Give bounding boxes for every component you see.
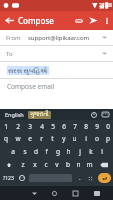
button[interactable]: Recent apps: [65, 186, 86, 200]
button[interactable]: s: [19, 145, 30, 158]
staticText: i: [85, 134, 87, 143]
staticText: From: [6, 34, 21, 42]
staticText: h: [66, 147, 71, 156]
staticText: ?123: [3, 175, 14, 182]
button[interactable]: ?123: [0, 171, 16, 185]
staticText: c: [44, 160, 48, 169]
button[interactable]: More options: [101, 11, 113, 30]
button[interactable]: Back: [24, 186, 44, 200]
button[interactable]: l: [96, 145, 107, 158]
button[interactable]: x: [29, 158, 40, 171]
button[interactable]: 4: [36, 120, 47, 132]
button[interactable]: y: [58, 132, 69, 145]
button[interactable]: k: [85, 145, 96, 158]
staticText: s: [23, 147, 27, 156]
staticText: English: [5, 111, 24, 118]
staticText: n: [76, 160, 81, 169]
staticText: 3: [28, 122, 32, 131]
button[interactable]: Keyboard settings: [99, 109, 111, 120]
button[interactable]: w: [12, 132, 24, 145]
staticText: e: [28, 134, 32, 143]
button[interactable]: t: [47, 132, 58, 145]
button[interactable]: સરસ સુબહિએ: [0, 62, 113, 78]
staticText: support@lipikaar.com: [28, 34, 90, 42]
button[interactable]: q: [0, 132, 12, 145]
staticText: To: [6, 50, 13, 58]
staticText: 5: [51, 122, 55, 131]
button[interactable]: m: [84, 158, 95, 171]
staticText: j: [79, 147, 81, 156]
staticText: g: [56, 147, 60, 156]
button[interactable]: u: [69, 132, 80, 145]
button[interactable]: Switch keyboard: [86, 186, 107, 200]
staticText: 7: [73, 122, 77, 131]
button[interactable]: d: [30, 145, 41, 158]
button[interactable]: 8: [80, 120, 91, 132]
staticText: 2: [16, 122, 20, 131]
button[interactable]: z: [17, 158, 29, 171]
staticText: 6: [62, 122, 66, 131]
button[interactable]: r: [36, 132, 47, 145]
staticText: k: [89, 147, 93, 156]
button[interactable]: b: [62, 158, 73, 171]
staticText: f: [45, 147, 48, 156]
button[interactable]: h: [63, 145, 74, 158]
staticText: w: [15, 134, 21, 143]
staticText: l: [101, 147, 103, 156]
button[interactable]: 5: [47, 120, 58, 132]
staticText: z: [21, 160, 25, 169]
button[interactable]: v: [51, 158, 62, 171]
staticText: a: [11, 147, 15, 156]
staticText: 8: [84, 122, 88, 131]
button[interactable]: Home: [44, 186, 65, 200]
staticText: y: [62, 134, 66, 143]
staticText: .: [79, 174, 81, 182]
button[interactable]: Backspace: [95, 158, 113, 171]
staticText: q: [4, 134, 8, 143]
button[interactable]: i: [80, 132, 91, 145]
button[interactable]: To: [0, 46, 113, 61]
staticText: 9: [95, 122, 99, 131]
staticText: d: [34, 147, 38, 156]
button[interactable]: a: [7, 145, 19, 158]
button[interactable]: 2: [12, 120, 24, 132]
button[interactable]: Emoji: [16, 171, 27, 185]
button[interactable]: ગુજરાતી: [28, 111, 51, 119]
button[interactable]: c: [40, 158, 51, 171]
staticText: x: [33, 160, 37, 169]
button[interactable]: Enter: [98, 173, 111, 183]
button[interactable]: g: [52, 145, 63, 158]
staticText: m: [86, 160, 93, 169]
staticText: r: [40, 134, 43, 143]
button[interactable]: n: [73, 158, 84, 171]
staticText: ગુજરાતી: [30, 112, 49, 118]
staticText: 0: [106, 122, 110, 131]
button[interactable]: Attach file: [71, 11, 86, 30]
button[interactable]: 7: [69, 120, 80, 132]
button[interactable]: Help: [88, 109, 99, 120]
button[interactable]: Send: [86, 11, 101, 30]
button[interactable]: English: [3, 110, 26, 119]
button[interactable]: 9: [91, 120, 102, 132]
button[interactable]: Back: [0, 11, 18, 30]
button[interactable]: 1: [0, 120, 12, 132]
button[interactable]: 6: [58, 120, 69, 132]
staticText: b: [66, 160, 70, 169]
button[interactable]: j: [74, 145, 85, 158]
button[interactable]: 3: [24, 120, 36, 132]
button[interactable]: .: [74, 171, 85, 185]
button[interactable]: e: [24, 132, 36, 145]
staticText: 1: [4, 122, 8, 131]
staticText: v: [55, 160, 59, 169]
button[interactable]: Compose: [18, 15, 54, 26]
button[interactable]: Compose email: [0, 79, 113, 93]
staticText: t: [51, 134, 54, 143]
button[interactable]: o: [91, 132, 102, 145]
button[interactable]: Settings: [85, 171, 96, 185]
button[interactable]: f: [41, 145, 52, 158]
button[interactable]: From: [0, 30, 113, 45]
button[interactable]: Shift: [0, 158, 17, 171]
button[interactable]: p: [102, 132, 113, 145]
button[interactable]: 0: [102, 120, 113, 132]
